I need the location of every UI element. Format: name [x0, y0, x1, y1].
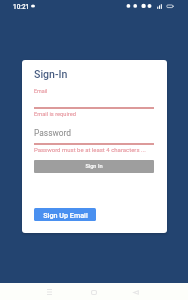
- staticText: 10:21: [13, 3, 30, 11]
- button[interactable]: Recent apps: [35, 285, 63, 299]
- staticText: Email is required: [34, 111, 76, 118]
- staticText: Password: [34, 128, 72, 138]
- button[interactable]: Back: [122, 285, 150, 299]
- button[interactable]: Sign Up Email: [34, 208, 96, 221]
- staticText: Password must be at least 4 characters .…: [34, 146, 146, 153]
- staticText: Sign In: [85, 163, 103, 170]
- other: Status icons: [126, 3, 176, 10]
- button[interactable]: Home: [80, 285, 108, 299]
- button[interactable]: Sign In: [34, 160, 154, 173]
- staticText: Sign Up Email: [43, 211, 88, 219]
- staticText: Sign-In: [34, 68, 68, 80]
- staticText: Email: [34, 88, 48, 94]
